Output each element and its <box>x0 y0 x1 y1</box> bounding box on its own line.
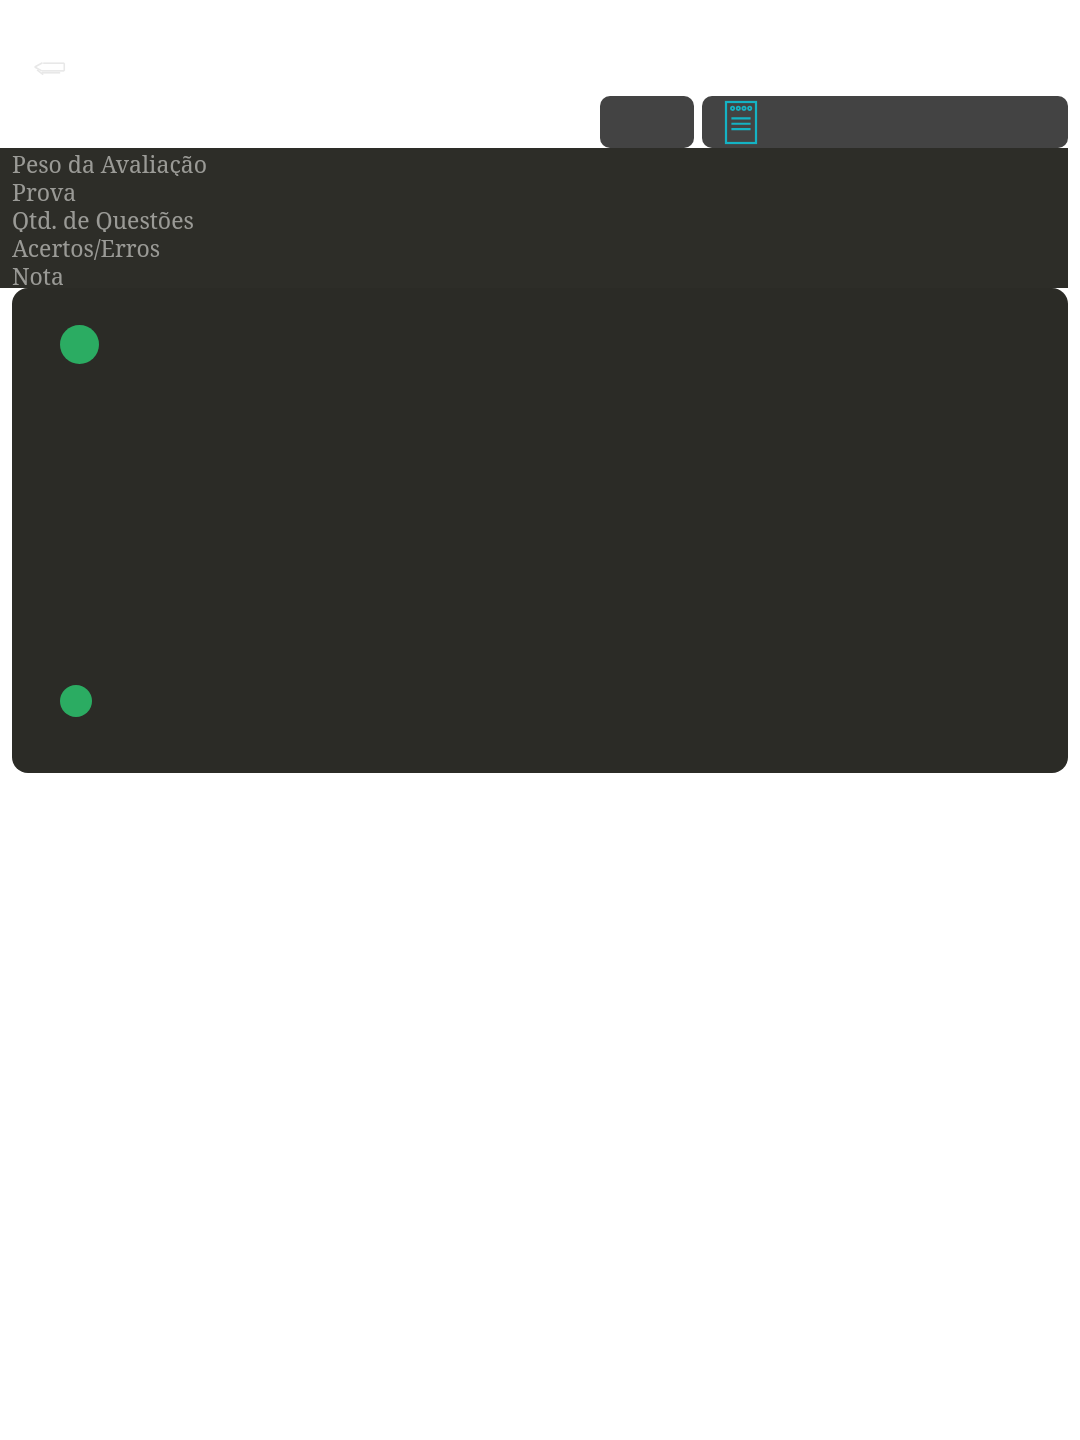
staticText: Prova <box>12 176 77 204</box>
button[interactable]: Prova <box>0 176 1068 204</box>
button[interactable]: Voltar <box>24 48 76 88</box>
button[interactable]: Nota <box>0 260 1068 288</box>
button[interactable]: Peso da Avaliação <box>0 148 1068 176</box>
button[interactable]: Ação <box>600 96 694 148</box>
staticText: Acertos/Erros <box>12 232 161 260</box>
staticText: Qtd. de Questões <box>12 204 194 232</box>
button[interactable]: Qtd. de Questões <box>0 204 1068 232</box>
staticText: Nota <box>12 260 64 288</box>
button[interactable] <box>702 96 1068 148</box>
staticText: Peso da Avaliação <box>12 148 207 176</box>
button[interactable]: Acertos/Erros <box>0 232 1068 260</box>
button[interactable] <box>12 288 1068 773</box>
